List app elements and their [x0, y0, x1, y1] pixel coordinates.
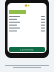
- button[interactable]: Continue: [9, 47, 45, 52]
- staticText: Continue: [20, 48, 34, 51]
